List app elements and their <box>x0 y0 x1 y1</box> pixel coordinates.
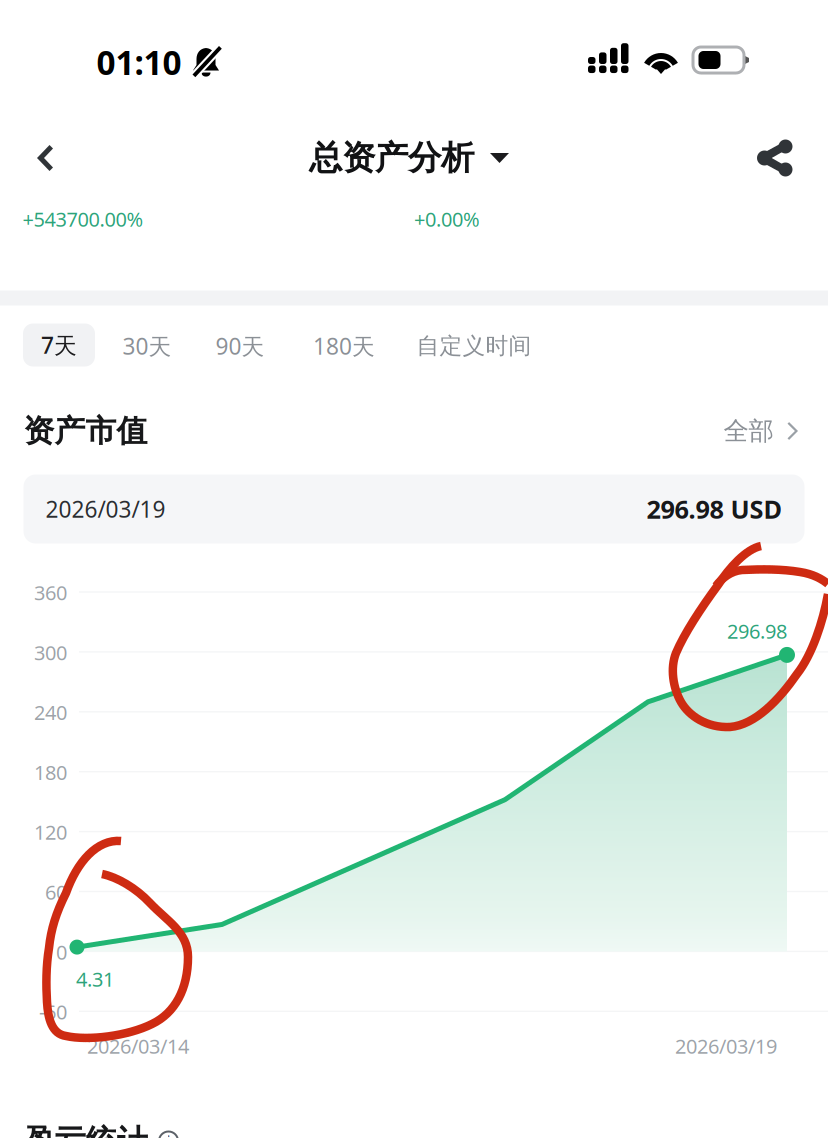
staticText: 300 <box>34 639 67 666</box>
staticText: 2026/03/19 <box>45 494 165 524</box>
staticText: 120 <box>34 819 67 845</box>
button[interactable]: 全部 <box>723 415 798 446</box>
staticText: 90天 <box>215 331 264 361</box>
staticText: 2026/03/19 <box>675 1033 777 1059</box>
button[interactable]: 90天 <box>202 324 278 367</box>
button[interactable]: Back <box>12 120 78 196</box>
button[interactable]: 自定义时间 <box>412 324 536 367</box>
staticText: +543700.00% <box>22 206 143 232</box>
staticText: +0.00% <box>414 206 480 232</box>
staticText: 180天 <box>313 331 375 361</box>
staticText: 2026/03/14 <box>87 1033 189 1059</box>
button[interactable]: 总资产分析 <box>299 120 519 196</box>
staticText: 180 <box>34 759 67 785</box>
button[interactable]: Share <box>742 120 808 196</box>
staticText: 全部 <box>723 415 773 446</box>
staticText: 4.31 <box>76 966 114 992</box>
staticText: 盈亏统计 <box>24 1122 148 1138</box>
staticText: 0 <box>56 939 67 965</box>
staticText: 自定义时间 <box>416 332 531 360</box>
button[interactable]: 30天 <box>109 324 185 367</box>
staticText: 296.98 USD <box>646 492 782 526</box>
staticText: 总资产分析 <box>309 137 474 178</box>
staticText: -60 <box>39 998 67 1025</box>
staticText: 360 <box>34 579 67 606</box>
staticText: 资产市值 <box>23 412 147 450</box>
button[interactable]: 7天 <box>23 323 95 366</box>
staticText: 60 <box>45 879 67 905</box>
button[interactable]: 180天 <box>301 324 387 367</box>
staticText: 7天 <box>41 330 77 360</box>
staticText: 30天 <box>122 331 171 361</box>
staticText: i <box>166 1130 170 1138</box>
staticText: 240 <box>34 699 67 726</box>
staticText: 296.98 <box>727 618 787 644</box>
staticText: 01:10 <box>96 40 181 84</box>
